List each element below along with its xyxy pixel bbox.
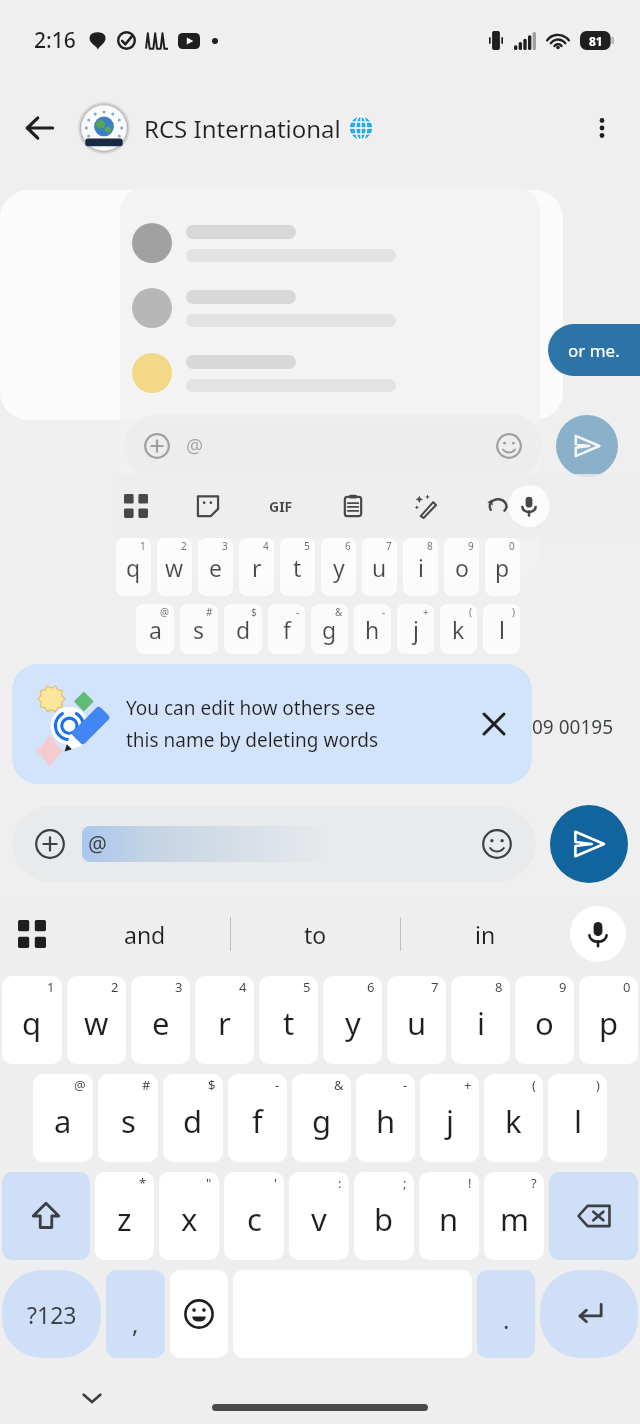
button[interactable]: Hide keyboard (72, 1378, 112, 1418)
button[interactable]: ?123 (2, 1270, 101, 1358)
staticText: & (334, 1076, 344, 1094)
staticText: ) (512, 605, 515, 619)
staticText: - (382, 605, 386, 619)
button[interactable]: and (60, 906, 230, 962)
button[interactable]: 2 (67, 976, 126, 1064)
button[interactable]: RCS International (78, 92, 373, 164)
staticText: + (464, 1076, 472, 1094)
staticText: 0 (623, 978, 631, 996)
staticText: 4 (239, 978, 247, 996)
staticText: s (193, 614, 205, 645)
button[interactable]: ; (354, 1172, 414, 1260)
button[interactable]: ) (548, 1074, 607, 1162)
button[interactable]: ? (484, 1172, 544, 1260)
staticText: RCS International (144, 112, 341, 145)
staticText: d (236, 614, 251, 645)
button[interactable]: Dismiss (470, 700, 518, 748)
staticText: z (117, 1198, 132, 1240)
staticText: l (574, 1100, 582, 1142)
button[interactable]: $ (163, 1074, 223, 1162)
button[interactable]: 1 (2, 976, 62, 1064)
staticText: 0 (509, 539, 515, 553)
staticText: 5 (304, 539, 310, 553)
staticText: this name by deleting words (126, 727, 379, 753)
button[interactable]: - (356, 1074, 415, 1162)
staticText: + (423, 605, 429, 619)
button[interactable]: to (231, 906, 400, 962)
button[interactable]: Backspace (549, 1172, 638, 1260)
staticText: $ (208, 1076, 216, 1094)
staticText: 1 (140, 539, 146, 553)
staticText: k (505, 1100, 522, 1142)
staticText: i (477, 1002, 485, 1044)
button[interactable]: You can edit how others see (12, 664, 532, 784)
button[interactable]: Emoji (480, 827, 514, 861)
button[interactable]: 5 (259, 976, 318, 1064)
staticText: j (446, 1100, 454, 1142)
staticText: s (121, 1100, 136, 1142)
button[interactable]: Keyboard toolbar (8, 910, 56, 958)
staticText: ( (532, 1076, 536, 1094)
staticText: 81 (589, 33, 603, 49)
staticText: @ (74, 1076, 86, 1094)
staticText: GIF (269, 497, 293, 516)
button[interactable]: @ (33, 1074, 93, 1162)
staticText: b (374, 1198, 394, 1240)
button[interactable]: & (292, 1074, 351, 1162)
button[interactable]: Comma (106, 1270, 165, 1358)
button[interactable]: 0 (579, 976, 638, 1064)
button[interactable]: Enter (540, 1270, 638, 1358)
staticText: w (165, 552, 184, 583)
staticText: 8 (495, 978, 503, 996)
button[interactable]: - (228, 1074, 287, 1162)
staticText: 8 (427, 539, 433, 553)
button[interactable]: Back (14, 102, 66, 154)
staticText: o (455, 552, 469, 583)
button[interactable]: Send (550, 805, 628, 883)
staticText: u (372, 552, 387, 583)
staticText: u (407, 1002, 427, 1044)
staticText: h (365, 614, 380, 645)
staticText: ) (596, 1076, 600, 1094)
staticText: 3 (175, 978, 183, 996)
staticText: g (322, 614, 337, 645)
button[interactable]: Shift (2, 1172, 90, 1260)
staticText: # (142, 1076, 151, 1094)
button[interactable]: 8 (451, 976, 510, 1064)
staticText: and (124, 919, 166, 950)
staticText: or me. (568, 339, 620, 362)
button[interactable]: : (289, 1172, 349, 1260)
button[interactable]: Add attachment (34, 828, 66, 860)
button[interactable]: in (401, 906, 570, 962)
button[interactable]: 7 (387, 976, 446, 1064)
button[interactable]: Emoji keyboard (170, 1270, 228, 1358)
button[interactable]: Add attachment (12, 806, 536, 882)
staticText: t (293, 552, 302, 583)
staticText: in (475, 919, 496, 950)
button[interactable]: ( (484, 1074, 543, 1162)
staticText: t (283, 1002, 295, 1044)
button[interactable]: + (420, 1074, 479, 1162)
staticText: e (152, 1002, 170, 1044)
button[interactable]: 6 (323, 976, 382, 1064)
button[interactable]: 9 (515, 976, 574, 1064)
button[interactable]: * (95, 1172, 154, 1260)
staticText: q (22, 1002, 42, 1044)
staticText: ! (468, 1174, 472, 1192)
button[interactable]: " (159, 1172, 219, 1260)
button[interactable]: More options (578, 104, 626, 152)
button[interactable]: ' (224, 1172, 284, 1260)
staticText: c (247, 1198, 262, 1240)
staticText: to (304, 919, 327, 950)
button[interactable]: Voice input (570, 906, 626, 962)
button[interactable]: ! (419, 1172, 479, 1260)
button[interactable]: # (98, 1074, 158, 1162)
staticText: y (345, 1002, 361, 1044)
button[interactable]: 3 (131, 976, 190, 1064)
button[interactable]: 4 (195, 976, 254, 1064)
staticText: $ (251, 605, 257, 619)
button[interactable]: Period (477, 1270, 535, 1358)
staticText: 4 (263, 539, 269, 553)
staticText: @ (160, 605, 169, 619)
